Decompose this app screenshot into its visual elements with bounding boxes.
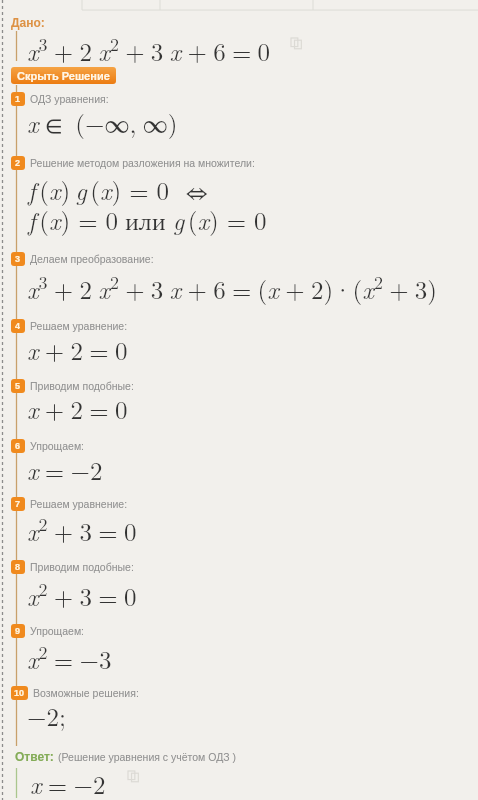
button[interactable]: 3	[11, 252, 154, 266]
staticText: Ответ:	[15, 750, 54, 763]
staticText: x2 + 3 = 0	[27, 576, 137, 613]
staticText: 8	[15, 562, 21, 572]
button[interactable]: Copy	[128, 771, 139, 782]
staticText: Возможные решения:	[33, 687, 139, 699]
staticText: 3	[15, 254, 21, 264]
button[interactable]: 1	[11, 92, 109, 106]
button[interactable]: Скрыть Решение	[11, 67, 116, 84]
button[interactable]: 6	[11, 439, 85, 453]
button[interactable]: Copy	[291, 38, 302, 49]
staticText: Упрощаем:	[30, 440, 85, 452]
staticText: x = −2	[30, 766, 106, 800]
staticText: 1	[15, 94, 21, 104]
staticText: Решаем уравнение:	[30, 498, 128, 510]
staticText: x = −2	[27, 452, 103, 487]
staticText: ОДЗ уравнения:	[30, 93, 109, 105]
button[interactable]: 7	[11, 497, 128, 511]
staticText: x + 2 = 0	[27, 391, 128, 426]
button[interactable]: 2	[11, 156, 255, 170]
staticText: 2	[15, 158, 21, 168]
staticText: −2;	[27, 698, 66, 733]
staticText: 6	[15, 441, 21, 451]
staticText: 10	[14, 688, 25, 698]
staticText: 9	[15, 626, 21, 636]
button[interactable]: 9	[11, 624, 85, 638]
staticText: x3 + 2 x2 + 3 x + 6 = 0	[27, 31, 271, 68]
staticText: Приводим подобные:	[30, 561, 134, 573]
button[interactable]: 4	[11, 319, 128, 333]
staticText: 5	[15, 381, 21, 391]
staticText: Дано:	[11, 16, 45, 29]
staticText: Скрыть Решение	[17, 70, 110, 82]
staticText: x2 + 3 = 0	[27, 511, 137, 548]
staticText: Приводим подобные:	[30, 380, 134, 392]
staticText: x ∈ (−∞, ∞)	[27, 105, 178, 140]
staticText: 7	[15, 499, 21, 509]
button[interactable]: 5	[11, 379, 134, 393]
staticText: Делаем преобразование:	[30, 253, 154, 265]
staticText: (Решение уравнения с учётом ОДЗ )	[58, 751, 237, 763]
staticText: Решение методом разложения на множители:	[30, 157, 255, 169]
staticText: x2 = −3	[27, 639, 112, 676]
staticText: Решаем уравнение:	[30, 320, 128, 332]
staticText: x3 + 2 x2 + 3 x + 6 = (x + 2)·(x2 + 3)	[27, 269, 438, 306]
staticText: Упрощаем:	[30, 625, 85, 637]
staticText: 4	[15, 321, 21, 331]
staticText: f (x) g (x) = 0 ⇔	[28, 172, 208, 207]
button[interactable]: 8	[11, 560, 134, 574]
staticText: x + 2 = 0	[27, 332, 128, 367]
staticText: f (x) = 0 или g (x) = 0	[28, 202, 267, 237]
button[interactable]: 10	[11, 686, 139, 700]
